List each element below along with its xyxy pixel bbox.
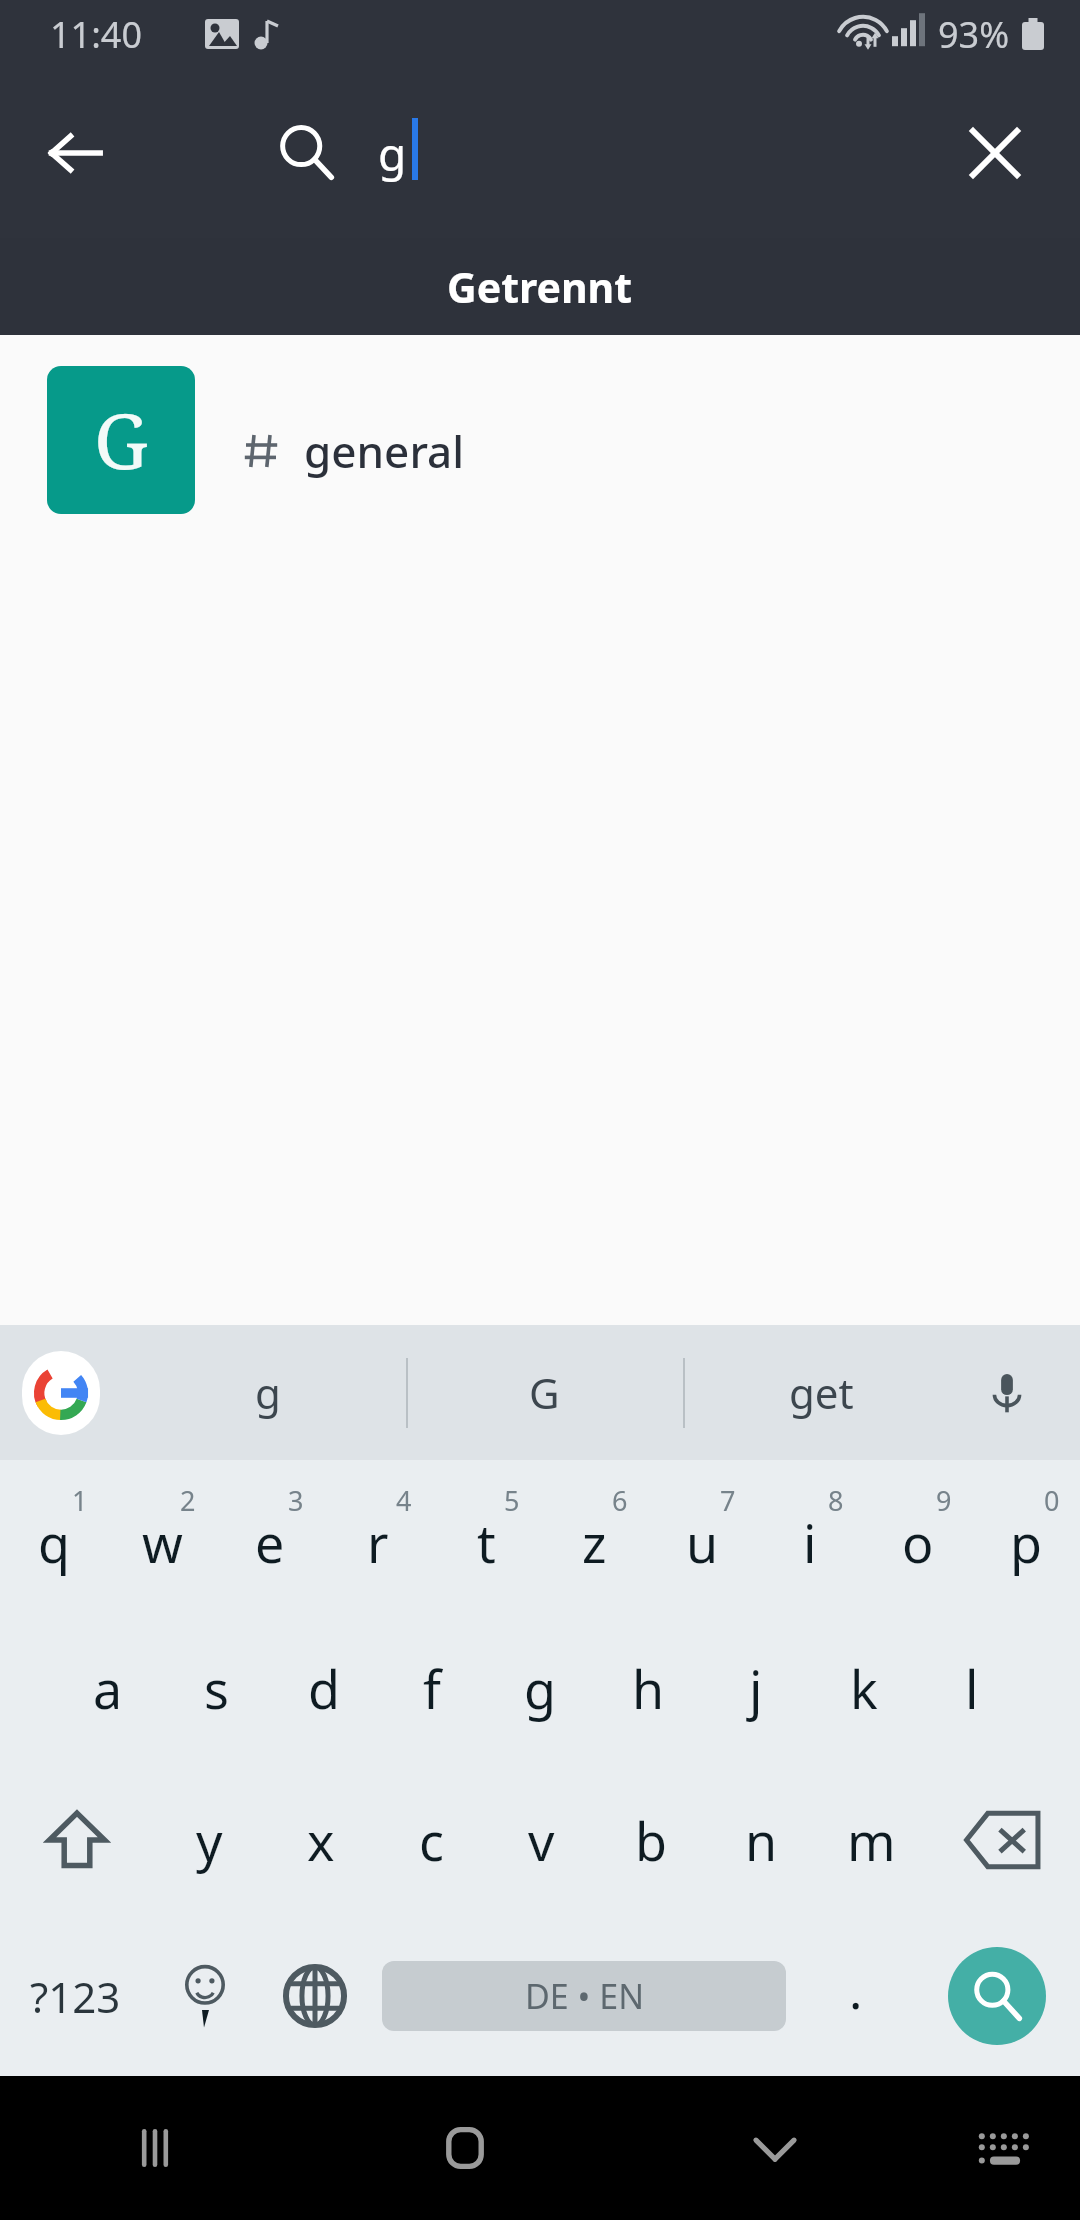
- button[interactable]: Back: [20, 98, 130, 208]
- staticText: 11:40: [50, 10, 143, 59]
- button[interactable]: a: [54, 1612, 162, 1764]
- button[interactable]: Voice input: [962, 1348, 1052, 1438]
- staticText: b: [635, 1805, 667, 1876]
- button[interactable]: .: [798, 1916, 914, 2076]
- staticText: 9: [936, 1482, 952, 1519]
- button[interactable]: v: [486, 1764, 596, 1916]
- button[interactable]: Shift: [0, 1764, 154, 1916]
- button[interactable]: j: [702, 1612, 810, 1764]
- staticText: g: [524, 1653, 556, 1724]
- staticText: 7: [720, 1482, 736, 1519]
- staticText: ?123: [30, 1968, 121, 2025]
- button[interactable]: p: [972, 1460, 1080, 1612]
- staticText: 3: [288, 1482, 304, 1519]
- staticText: x: [307, 1805, 335, 1876]
- staticText: s: [204, 1653, 229, 1724]
- button[interactable]: l: [918, 1612, 1026, 1764]
- staticText: f: [423, 1653, 441, 1724]
- staticText: 8: [828, 1482, 844, 1519]
- button[interactable]: Recents: [0, 2076, 310, 2220]
- staticText: general: [304, 421, 465, 481]
- staticText: q: [38, 1507, 70, 1578]
- staticText: 2: [180, 1482, 196, 1519]
- staticText: l: [965, 1653, 979, 1724]
- button[interactable]: m: [816, 1764, 926, 1916]
- staticText: k: [850, 1653, 878, 1724]
- staticText: g: [255, 1364, 281, 1421]
- staticText: G: [94, 388, 149, 492]
- button[interactable]: Emoji: [150, 1916, 260, 2076]
- button[interactable]: Backspace: [926, 1764, 1080, 1916]
- staticText: r: [367, 1507, 389, 1578]
- staticText: e: [255, 1507, 285, 1578]
- button[interactable]: get: [683, 1325, 960, 1460]
- staticText: d: [308, 1653, 340, 1724]
- button[interactable]: q: [0, 1460, 108, 1612]
- button[interactable]: DE • EN: [382, 1961, 786, 2031]
- staticText: 4: [396, 1482, 412, 1519]
- staticText: h: [632, 1653, 665, 1724]
- staticText: 0: [1044, 1482, 1060, 1519]
- staticText: m: [847, 1805, 896, 1876]
- staticText: n: [745, 1805, 778, 1876]
- button[interactable]: n: [706, 1764, 816, 1916]
- button[interactable]: G: [406, 1325, 683, 1460]
- staticText: 93%: [938, 10, 1010, 59]
- button[interactable]: G: [0, 335, 1080, 545]
- button[interactable]: b: [596, 1764, 706, 1916]
- staticText: .: [849, 1956, 863, 2024]
- staticText: c: [419, 1805, 444, 1876]
- button[interactable]: h: [594, 1612, 702, 1764]
- button[interactable]: d: [270, 1612, 378, 1764]
- staticText: g: [378, 122, 407, 185]
- button[interactable]: o: [864, 1460, 972, 1612]
- button[interactable]: k: [810, 1612, 918, 1764]
- button[interactable]: Change language: [260, 1916, 370, 2076]
- button[interactable]: g: [130, 1325, 406, 1460]
- staticText: 5: [504, 1482, 520, 1519]
- button[interactable]: Switch keyboard: [930, 2076, 1080, 2220]
- staticText: 6: [612, 1482, 628, 1519]
- staticText: DE • EN: [525, 1973, 644, 2019]
- staticText: y: [196, 1805, 223, 1876]
- staticText: w: [142, 1507, 183, 1578]
- button[interactable]: Clear search: [940, 98, 1050, 208]
- button[interactable]: s: [162, 1612, 270, 1764]
- button[interactable]: w: [108, 1460, 216, 1612]
- staticText: p: [1010, 1507, 1042, 1578]
- staticText: get: [789, 1364, 854, 1421]
- button[interactable]: ?123: [0, 1916, 150, 2076]
- button[interactable]: Google: [22, 1351, 100, 1435]
- staticText: j: [749, 1653, 763, 1724]
- staticText: G: [529, 1364, 560, 1421]
- staticText: o: [902, 1507, 934, 1578]
- button[interactable]: i: [756, 1460, 864, 1612]
- button[interactable]: e: [216, 1460, 324, 1612]
- button[interactable]: c: [376, 1764, 486, 1916]
- button[interactable]: Home: [310, 2076, 620, 2220]
- staticText: t: [477, 1507, 496, 1578]
- button[interactable]: r: [324, 1460, 432, 1612]
- staticText: a: [93, 1653, 123, 1724]
- staticText: u: [686, 1507, 719, 1578]
- button[interactable]: Search: [948, 1947, 1046, 2045]
- button[interactable]: t: [432, 1460, 540, 1612]
- button[interactable]: u: [648, 1460, 756, 1612]
- button[interactable]: z: [540, 1460, 648, 1612]
- button[interactable]: f: [378, 1612, 486, 1764]
- staticText: v: [528, 1805, 555, 1876]
- button[interactable]: y: [154, 1764, 265, 1916]
- staticText: Getrennt: [447, 259, 633, 315]
- staticText: 1: [72, 1482, 88, 1519]
- button[interactable]: g: [486, 1612, 594, 1764]
- button[interactable]: Hide keyboard: [620, 2076, 930, 2220]
- button[interactable]: Getrennt: [0, 238, 1080, 335]
- staticText: i: [803, 1507, 817, 1578]
- button[interactable]: x: [265, 1764, 376, 1916]
- staticText: z: [582, 1507, 607, 1578]
